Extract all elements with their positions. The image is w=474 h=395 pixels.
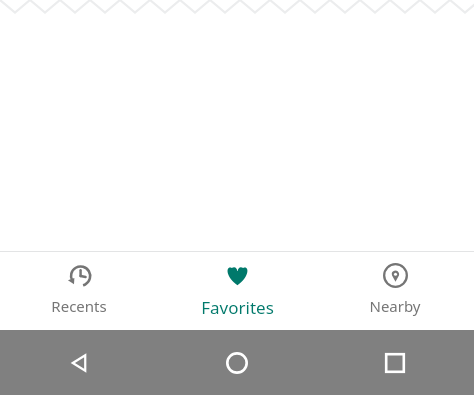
button[interactable]: Back	[0, 330, 158, 395]
button[interactable]: Recent apps	[316, 330, 474, 395]
staticText: Favorites	[201, 296, 274, 319]
button[interactable]: Favorites	[158, 252, 316, 330]
button[interactable]: Nearby	[316, 252, 474, 330]
staticText: Recents	[51, 296, 107, 316]
button[interactable]: Home	[158, 330, 316, 395]
other: Favorites	[224, 262, 251, 289]
button[interactable]: Recents	[0, 252, 158, 330]
other: Recents	[66, 262, 93, 289]
staticText: Nearby	[369, 296, 421, 316]
other: Nearby	[382, 262, 409, 289]
